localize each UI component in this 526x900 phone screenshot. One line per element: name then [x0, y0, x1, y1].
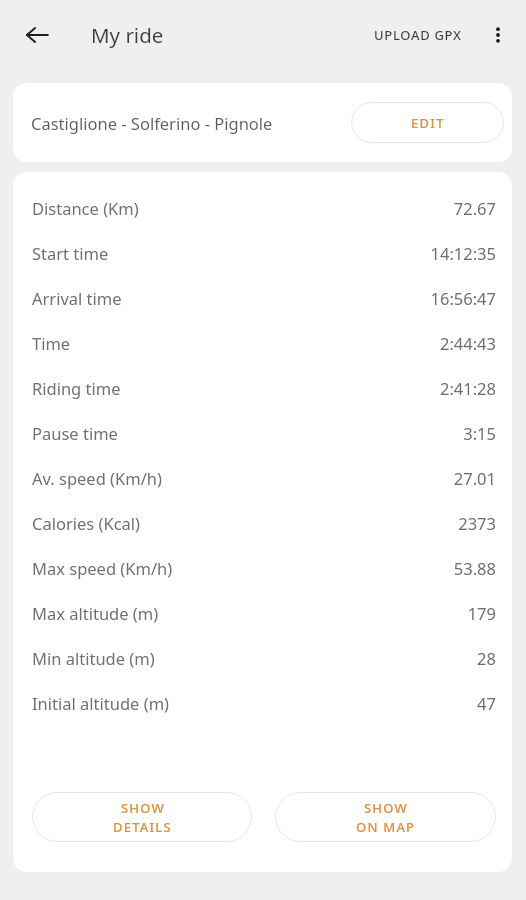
staticText: Max altitude (m) — [32, 602, 159, 624]
staticText: My ride — [91, 21, 164, 49]
staticText: ON MAP — [356, 818, 416, 836]
button[interactable]: SHOW — [32, 792, 252, 842]
button[interactable]: UPLOAD GPX — [368, 18, 468, 52]
staticText: Initial altitude (m) — [32, 692, 170, 714]
staticText: SHOW — [364, 799, 408, 817]
button[interactable]: SHOW — [275, 792, 496, 842]
staticText: Start time — [32, 242, 109, 264]
staticText: DETAILS — [113, 818, 172, 836]
button[interactable]: More options — [476, 13, 520, 57]
staticText: 47 — [477, 692, 496, 714]
staticText: 2:41:28 — [439, 377, 496, 399]
staticText: 53.88 — [453, 557, 496, 579]
staticText: 2:44:43 — [439, 332, 496, 354]
staticText: Pause time — [32, 422, 118, 444]
staticText: Castiglione - Solferino - Pignole — [31, 112, 273, 134]
staticText: Distance (Km) — [32, 197, 139, 219]
button[interactable]: EDIT — [351, 102, 504, 143]
staticText: Max speed (Km/h) — [32, 557, 173, 579]
staticText: 3:15 — [463, 422, 496, 444]
staticText: 72.67 — [453, 197, 496, 219]
staticText: Arrival time — [32, 287, 122, 309]
staticText: Riding time — [32, 377, 121, 399]
staticText: SHOW — [121, 799, 165, 817]
staticText: Time — [32, 332, 71, 354]
staticText: 16:56:47 — [430, 287, 496, 309]
staticText: 2373 — [458, 512, 496, 534]
staticText: 14:12:35 — [430, 242, 496, 264]
staticText: UPLOAD GPX — [374, 26, 462, 44]
button[interactable]: Back — [13, 11, 61, 59]
staticText: Min altitude (m) — [32, 647, 155, 669]
staticText: 27.01 — [453, 467, 496, 489]
staticText: EDIT — [411, 114, 445, 132]
staticText: Calories (Kcal) — [32, 512, 141, 534]
staticText: Av. speed (Km/h) — [32, 467, 162, 489]
staticText: 179 — [467, 602, 496, 624]
staticText: 28 — [477, 647, 496, 669]
